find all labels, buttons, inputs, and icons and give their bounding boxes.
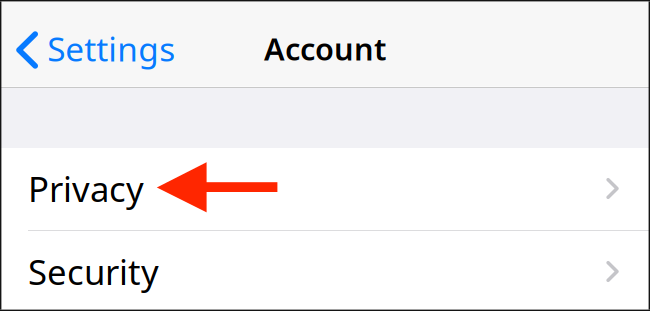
- button[interactable]: Privacy: [0, 148, 650, 230]
- staticText: Account: [264, 28, 386, 69]
- staticText: Privacy: [28, 165, 144, 211]
- button[interactable]: Security: [0, 231, 650, 311]
- button[interactable]: Back to Settings: [0, 0, 187, 86]
- staticText: Settings: [47, 26, 175, 71]
- staticText: Security: [28, 248, 159, 294]
